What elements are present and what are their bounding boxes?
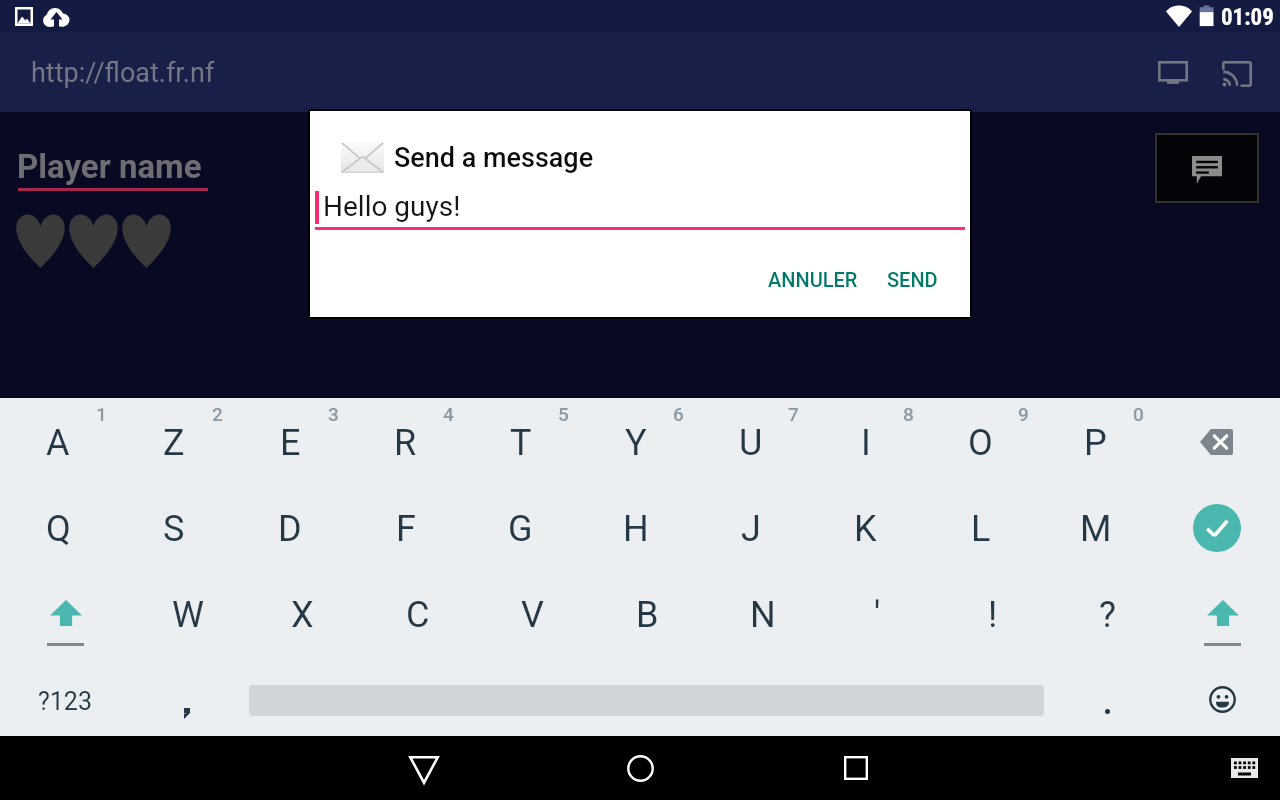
staticText: O [968,422,993,464]
staticText: G [508,508,533,550]
staticText: V [521,594,544,636]
button[interactable]: Z [116,398,232,484]
staticText: 5 [558,403,569,425]
button[interactable]: Shift [0,570,130,656]
button[interactable]: Emoji [1165,656,1280,736]
button[interactable]: J [693,484,808,570]
staticText: I [861,422,871,464]
button[interactable]: Enter [1153,484,1280,570]
button[interactable]: A [0,398,116,484]
button[interactable]: O [923,398,1038,484]
staticText: 7 [788,403,799,425]
button[interactable]: L [923,484,1038,570]
staticText: 2 [212,403,223,425]
button[interactable]: D [232,484,348,570]
button[interactable]: S [116,484,232,570]
button[interactable] [1050,656,1165,736]
staticText: L [971,508,991,550]
staticText: ' [874,594,881,636]
button[interactable]: Space [244,656,1050,736]
button[interactable]: ? [1050,570,1165,656]
staticText: 3 [328,403,339,425]
staticText: R [394,422,417,464]
staticText: Send a message [394,142,594,174]
button[interactable]: Recents [824,736,888,800]
button[interactable]: I [808,398,923,484]
staticText: F [396,508,416,550]
staticText: N [750,594,776,636]
staticText: Player name [17,147,202,186]
staticText: M [1080,508,1112,550]
button[interactable] [129,656,244,736]
staticText: ! [988,594,998,636]
staticText: 1 [96,403,107,425]
button[interactable]: U [693,398,808,484]
staticText: 8 [903,403,914,425]
button[interactable]: R [348,398,463,484]
staticText: W [172,594,204,636]
staticText: J [741,508,761,550]
button[interactable]: ?123 [0,656,129,736]
staticText: E [280,422,301,464]
button[interactable]: M [1038,484,1153,570]
staticText: 01:09 [1221,4,1274,31]
button[interactable]: W [130,570,245,656]
button[interactable]: P [1038,398,1153,484]
staticText: 0 [1133,403,1144,425]
staticText: T [510,422,532,464]
button[interactable]: K [808,484,923,570]
button[interactable]: E [232,398,348,484]
button[interactable]: Shift [1165,570,1280,656]
button[interactable]: T [463,398,578,484]
button[interactable]: ! [935,570,1050,656]
button[interactable]: G [463,484,578,570]
staticText: D [278,508,302,550]
staticText: Hello guys! [323,190,461,223]
staticText: B [636,594,659,636]
staticText: Q [46,508,71,550]
staticText: A [46,422,70,464]
button[interactable]: B [590,570,705,656]
button[interactable]: Q [0,484,116,570]
button[interactable]: Hide keyboard [1216,740,1272,796]
staticText: P [1084,422,1107,464]
button[interactable]: X [245,570,360,656]
button[interactable]: Y [578,398,693,484]
staticText: Y [625,422,647,464]
staticText: C [406,594,430,636]
staticText: H [623,508,649,550]
staticText: U [739,422,763,464]
button[interactable]: Home [608,736,672,800]
staticText: Z [163,422,185,464]
staticText: 9 [1018,403,1029,425]
staticText: X [291,594,314,636]
staticText: http://float.fr.nf [31,57,215,89]
staticText: S [163,508,185,550]
button[interactable]: ANNULER [752,258,874,301]
button[interactable]: SEND [871,258,954,301]
staticText: 6 [673,403,684,425]
staticText: K [854,508,877,550]
button[interactable]: N [705,570,820,656]
button[interactable]: F [348,484,463,570]
button[interactable]: H [578,484,693,570]
button[interactable]: V [475,570,590,656]
button[interactable]: Display [1145,46,1201,102]
staticText: ?123 [38,687,92,716]
button[interactable]: ' [820,570,935,656]
button[interactable]: Back [392,736,456,800]
button[interactable]: C [360,570,475,656]
staticText: 4 [443,403,454,425]
button[interactable]: Messages [1157,135,1257,201]
button[interactable]: Backspace [1153,398,1280,484]
button[interactable]: Cast [1209,46,1265,102]
staticText: ? [1099,594,1117,636]
